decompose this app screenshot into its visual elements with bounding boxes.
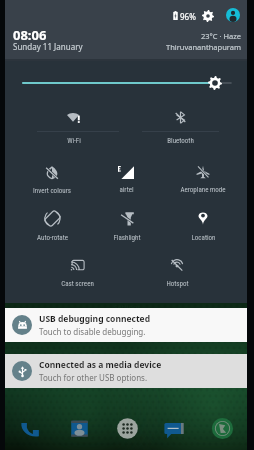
staticText: Bluetooth — [167, 137, 194, 145]
button[interactable]: Bluetooth — [140, 107, 220, 143]
button[interactable]: Location — [165, 208, 241, 244]
button[interactable]: Cast screen — [37, 255, 117, 291]
button[interactable]: Auto-rotate — [15, 208, 89, 244]
button[interactable]: Hotspot — [137, 255, 217, 291]
button[interactable]: Flashlight — [90, 208, 164, 244]
staticText: 96% — [180, 11, 196, 22]
button[interactable]: Contacts — [63, 412, 95, 444]
button[interactable]: Aeroplane mode — [165, 162, 241, 198]
staticText: USB debugging connected — [39, 313, 151, 325]
button[interactable]: airtel — [89, 162, 163, 198]
button[interactable]: Wi-Fi — [34, 107, 114, 143]
staticText: 23°C · Haze — [201, 31, 241, 41]
staticText: Thiruvananthapuram — [166, 42, 241, 52]
button[interactable]: USB debugging connected — [4, 308, 249, 342]
staticText: 08:06 — [13, 26, 47, 44]
button[interactable]: Apps — [111, 412, 143, 444]
staticText: Sunday 11 January — [13, 41, 83, 52]
button[interactable]: Messages — [158, 412, 190, 444]
staticText: Wi-Fi — [67, 137, 81, 145]
staticText: Flashlight — [113, 234, 141, 242]
staticText: Invert colours — [33, 187, 71, 195]
staticText: Cast screen — [61, 280, 94, 288]
staticText: Touch for other USB options. — [39, 372, 148, 383]
button[interactable]: Connected as a media device — [4, 354, 249, 388]
staticText: Auto-rotate — [37, 234, 68, 242]
staticText: Location — [191, 234, 216, 242]
staticText: airtel — [119, 186, 134, 194]
button[interactable]: User profile — [226, 8, 240, 22]
button[interactable]: Settings — [201, 9, 215, 23]
button[interactable]: Browser — [206, 412, 238, 444]
staticText: Touch to disable debugging. — [39, 326, 146, 337]
staticText: Aeroplane mode — [180, 186, 226, 194]
button[interactable]: Phone — [15, 412, 47, 444]
staticText: Hotspot — [166, 280, 189, 288]
button[interactable]: Invert colours — [15, 163, 89, 199]
staticText: Connected as a media device — [39, 359, 162, 371]
